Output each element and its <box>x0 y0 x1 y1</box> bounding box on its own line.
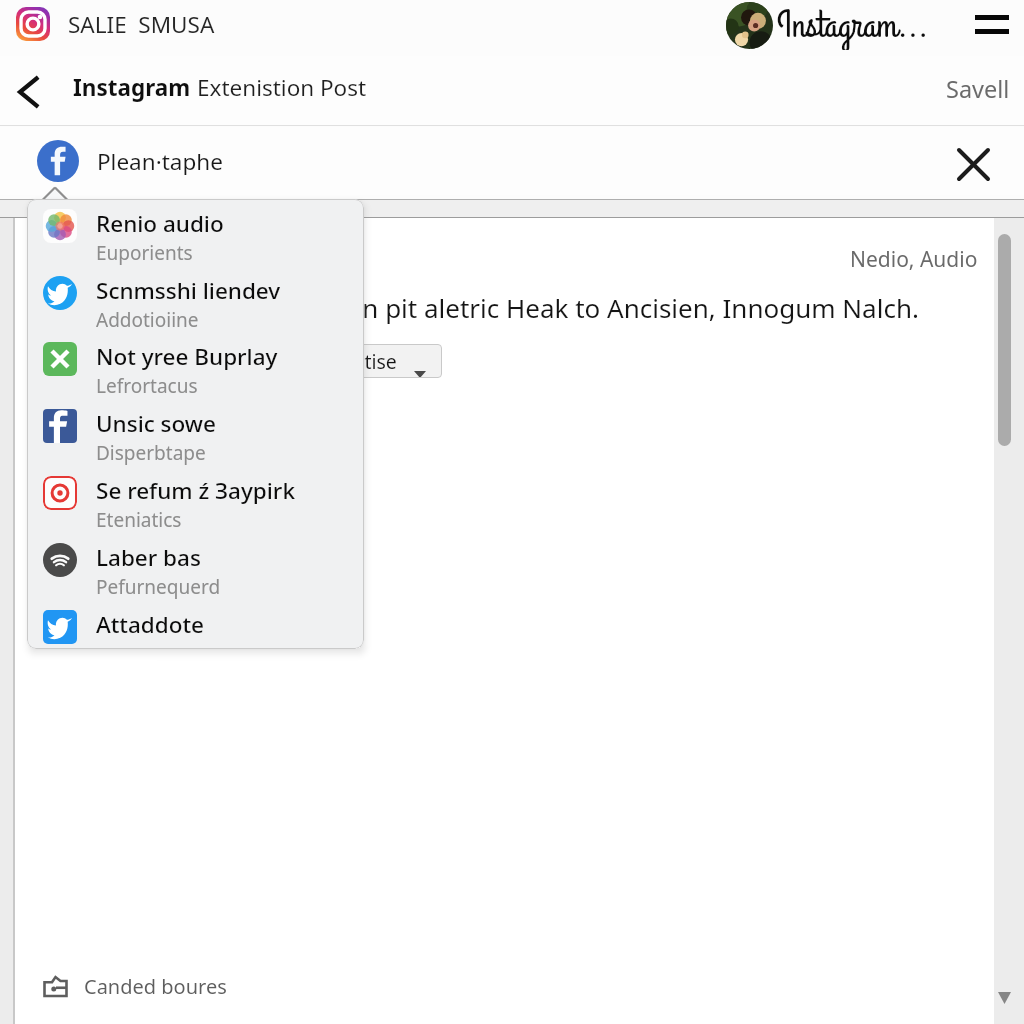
staticText: Instagram <box>73 72 197 103</box>
button[interactable]: Advertise <box>301 344 442 378</box>
staticText: SALIE SMUSA <box>68 9 215 40</box>
button[interactable]: Not yree Buprlay <box>27 326 364 393</box>
staticText: Addotioiine <box>96 307 199 333</box>
button[interactable]: Menu <box>966 1 1018 47</box>
button[interactable]: SALIE SMUSA <box>10 0 215 50</box>
button[interactable]: Savell <box>936 63 1020 115</box>
button[interactable]: Close <box>950 141 996 187</box>
staticText: Canded boures <box>84 973 227 1000</box>
staticText: Instagram... <box>777 0 929 50</box>
button[interactable]: Unsic sowe <box>27 393 364 460</box>
staticText: Advertise <box>311 348 397 375</box>
button[interactable]: Se refum ź Зaypirk <box>27 460 364 527</box>
button[interactable]: Instagram... <box>726 0 929 50</box>
staticText: Extenistion Post <box>197 72 367 103</box>
staticText: Se refum ź Зaypirk <box>96 475 295 506</box>
staticText: Pefurnequerd <box>96 574 221 600</box>
staticText: Lefrortacus <box>96 373 198 399</box>
staticText: Renio audio <box>96 208 224 239</box>
staticText: Disperbtape <box>96 440 206 466</box>
staticText: Not yree Buprlay <box>96 341 278 372</box>
button[interactable]: Plean·taphe <box>37 135 223 187</box>
staticText: Plean·taphe <box>97 146 223 177</box>
button[interactable]: Canded boures <box>43 966 227 1006</box>
staticText: Attaddote <box>96 609 205 640</box>
button[interactable]: Laber bas <box>27 527 364 594</box>
staticText: Eteniatics <box>96 507 182 533</box>
staticText: Nedio, Audio <box>850 245 978 274</box>
staticText: Unsic sowe <box>96 408 216 439</box>
staticText: to beıun pit aletric Heak to Ancisien, I… <box>277 290 919 325</box>
staticText: Laber bas <box>96 542 201 573</box>
button[interactable]: Back <box>6 70 50 114</box>
staticText: Scnmsshi liendev <box>96 275 281 306</box>
button[interactable]: Scnmsshi liendev <box>27 260 364 327</box>
button[interactable]: Attaddote <box>27 594 364 649</box>
staticText: Savell <box>946 73 1010 105</box>
staticText: Euporients <box>96 240 193 266</box>
button[interactable]: Renio audio <box>27 199 364 260</box>
